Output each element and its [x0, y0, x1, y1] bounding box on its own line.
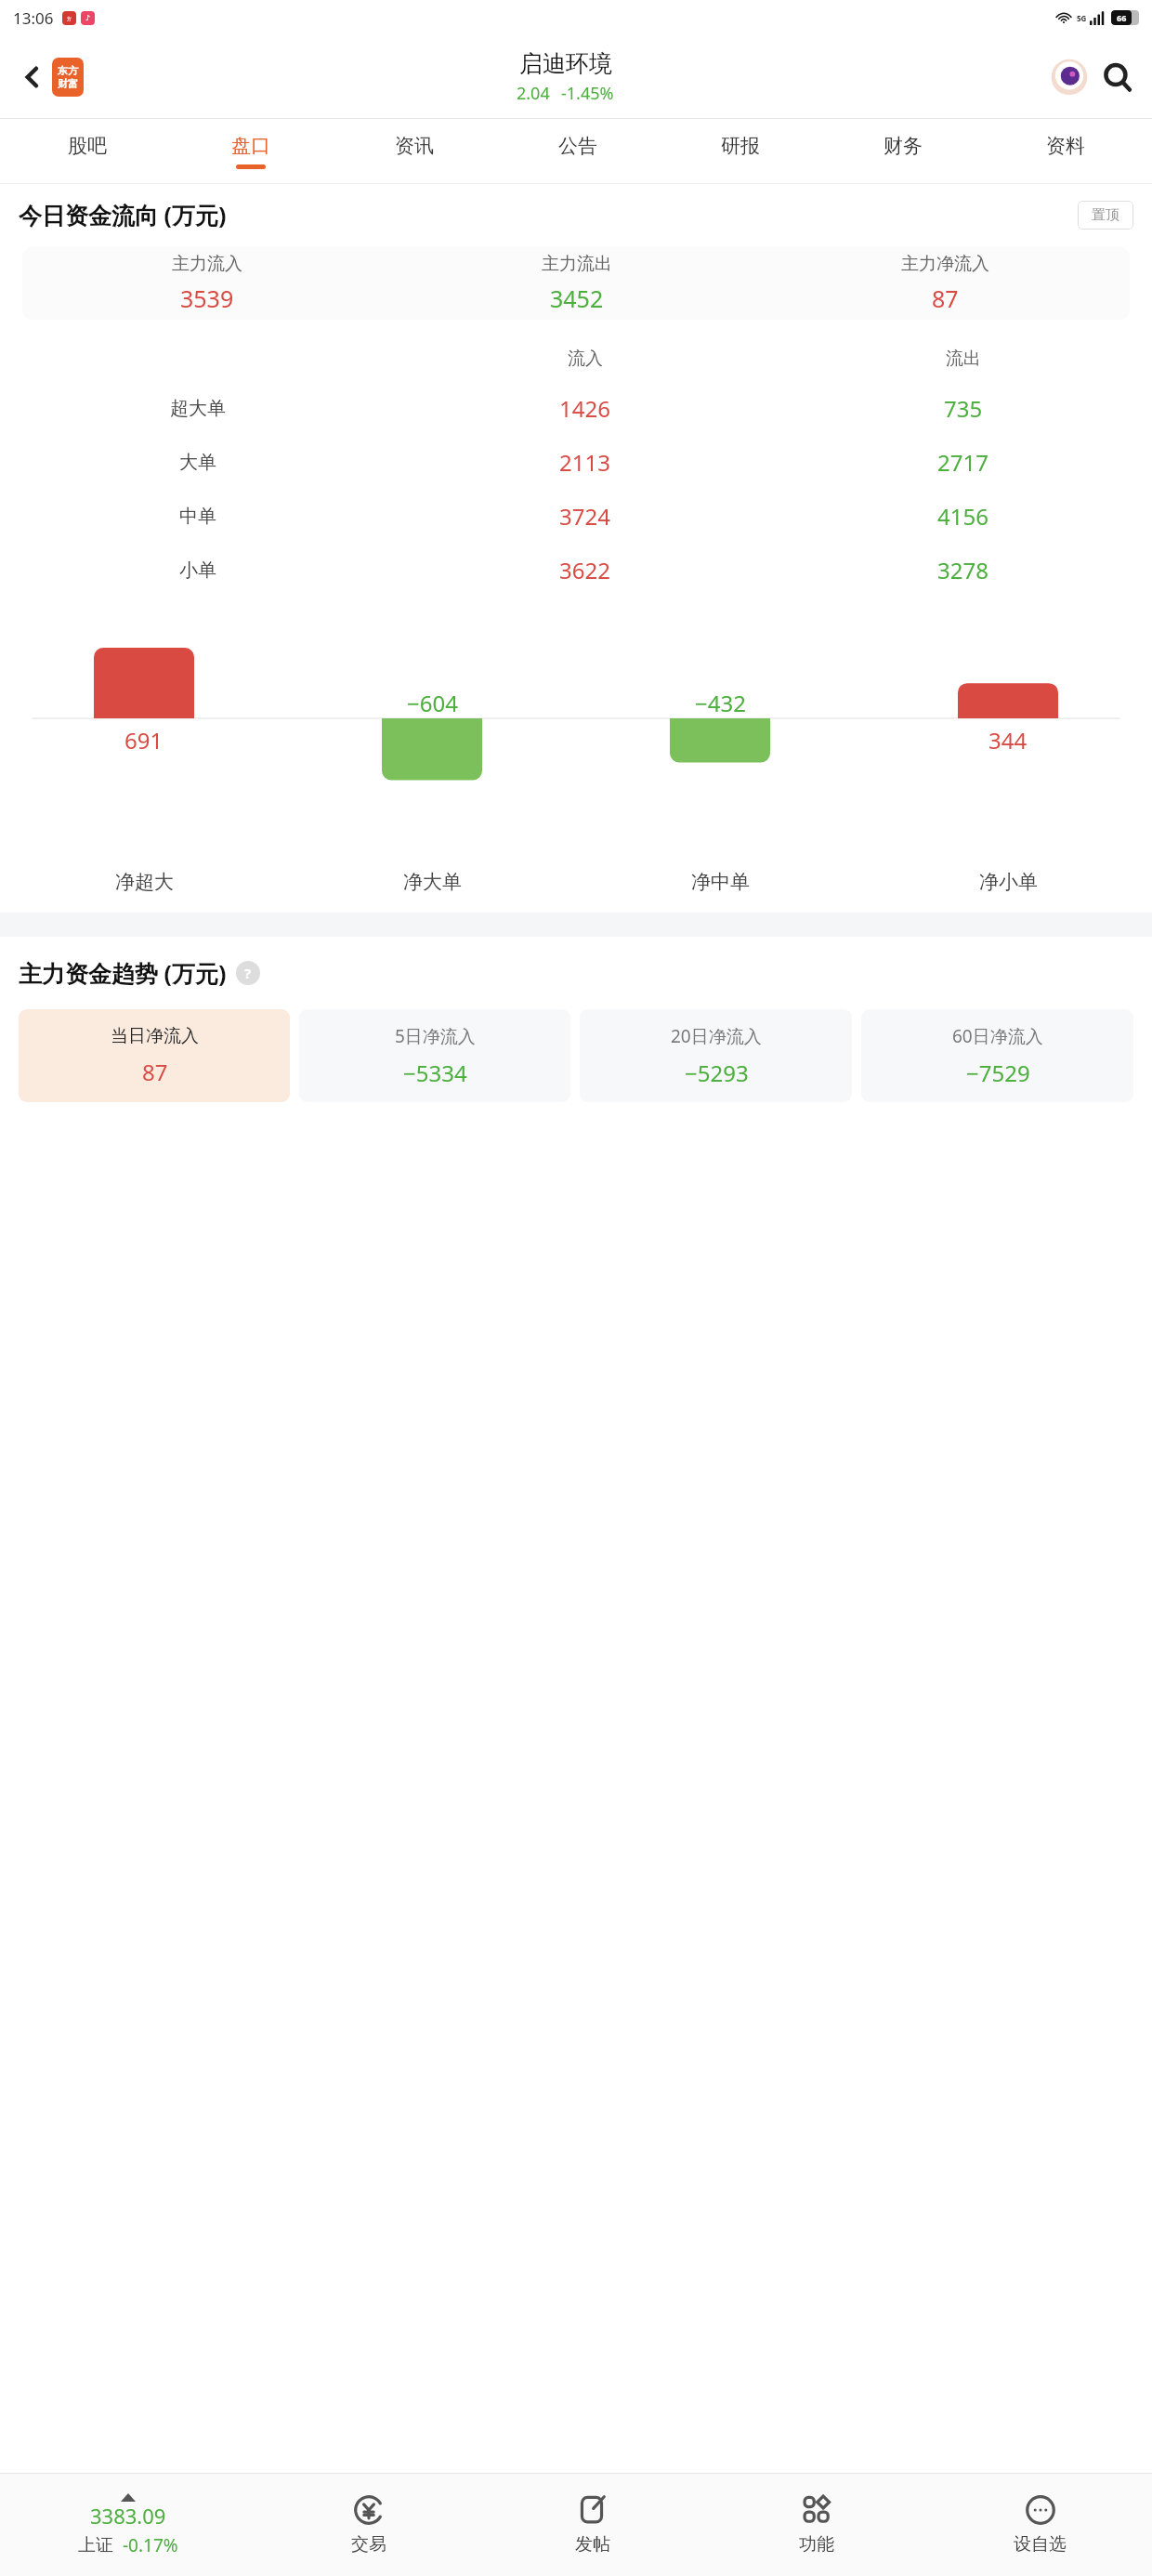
staticText: 主力资金趋势 (万元) — [19, 957, 227, 989]
staticText: −5293 — [685, 1058, 749, 1088]
staticText: 小单 — [179, 559, 216, 582]
staticText: 股吧 — [68, 134, 107, 158]
staticText: 主力净流入 — [901, 253, 989, 275]
staticText: 启迪环境 — [519, 49, 612, 78]
button[interactable]: Assistant — [1048, 56, 1091, 99]
staticText: 2717 — [937, 447, 988, 478]
staticText: 3278 — [937, 555, 988, 585]
staticText: 流出 — [946, 348, 981, 370]
staticText: 691 — [124, 725, 164, 756]
button[interactable]: 置顶 — [1078, 201, 1133, 230]
staticText: 87 — [932, 283, 959, 314]
staticText: 今日资金流向 (万元) — [19, 199, 227, 230]
staticText: 4156 — [937, 501, 988, 532]
staticText: 2.04 — [517, 82, 550, 105]
staticText: ? — [244, 964, 252, 982]
button[interactable]: 资料 — [984, 119, 1146, 184]
staticText: 净大单 — [403, 870, 462, 894]
staticText: 超大单 — [170, 397, 226, 420]
staticText: −5334 — [403, 1058, 467, 1088]
staticText: 5日净流入 — [395, 1024, 476, 1048]
staticText: ♪ — [85, 14, 91, 22]
button[interactable]: 60日净流入 — [861, 1009, 1133, 1102]
button[interactable]: 设自选 — [928, 2474, 1152, 2576]
staticText: -0.17% — [123, 2533, 178, 2557]
staticText: 发帖 — [575, 2533, 610, 2556]
button[interactable]: 研报 — [659, 119, 821, 184]
staticText: 3724 — [559, 501, 610, 532]
staticText: 资讯 — [395, 134, 434, 158]
staticText: 财务 — [884, 134, 923, 158]
staticText: 公告 — [558, 134, 597, 158]
staticText: 功能 — [799, 2533, 834, 2556]
staticText: 2113 — [559, 447, 610, 478]
staticText: 东方 — [58, 64, 78, 77]
staticText: 20日净流入 — [671, 1024, 762, 1048]
button[interactable]: 当日净流入 — [19, 1009, 290, 1102]
staticText: 设自选 — [1014, 2533, 1067, 2556]
button[interactable]: 20日净流入 — [580, 1009, 852, 1102]
staticText: 净中单 — [691, 870, 750, 894]
button[interactable]: 股吧 — [6, 119, 169, 184]
button[interactable]: 交易 — [256, 2474, 480, 2576]
staticText: 当日净流入 — [111, 1025, 199, 1047]
staticText: 3539 — [180, 283, 234, 314]
button[interactable]: Search — [1096, 56, 1139, 99]
staticText: 735 — [944, 393, 983, 424]
staticText: 87 — [142, 1057, 168, 1087]
button[interactable]: Back — [13, 58, 52, 97]
staticText: -1.45% — [561, 82, 614, 105]
button[interactable]: 盘口 — [169, 119, 333, 184]
staticText: −432 — [695, 688, 746, 718]
staticText: 1426 — [559, 393, 610, 424]
staticText: 主力流入 — [172, 253, 242, 275]
button[interactable]: 5日净流入 — [299, 1009, 570, 1102]
button[interactable]: 发帖 — [480, 2474, 704, 2576]
staticText: 中单 — [179, 505, 216, 528]
staticText: 流入 — [568, 348, 603, 370]
button[interactable]: 功能 — [704, 2474, 928, 2576]
button[interactable]: 3383.09 — [0, 2474, 256, 2576]
staticText: 主力流出 — [542, 253, 612, 275]
button[interactable]: 东方 — [52, 58, 84, 97]
staticText: 13:06 — [13, 7, 54, 29]
staticText: 盘口 — [231, 134, 270, 158]
button[interactable]: 公告 — [496, 119, 659, 184]
staticText: 资料 — [1046, 134, 1085, 158]
button[interactable]: Help — [236, 961, 260, 985]
staticText: 344 — [988, 725, 1028, 756]
staticText: 交易 — [351, 2533, 386, 2556]
button[interactable]: 资讯 — [333, 119, 496, 184]
staticText: 3452 — [550, 283, 604, 314]
staticText: −7529 — [966, 1058, 1030, 1088]
staticText: 60日净流入 — [952, 1024, 1043, 1048]
staticText: 上证 — [78, 2534, 113, 2556]
staticText: 置顶 — [1092, 206, 1119, 224]
staticText: 大单 — [179, 451, 216, 474]
staticText: 3383.09 — [90, 2502, 166, 2530]
staticText: 净超大 — [115, 870, 174, 894]
staticText: −604 — [407, 688, 458, 718]
button[interactable]: 财务 — [821, 119, 984, 184]
staticText: 3622 — [559, 555, 610, 585]
staticText: 方 — [67, 16, 72, 21]
staticText: 5G — [1077, 13, 1087, 23]
staticText: 66 — [1117, 12, 1127, 23]
staticText: 财富 — [58, 77, 78, 90]
staticText: 研报 — [721, 134, 760, 158]
staticText: 净小单 — [979, 870, 1038, 894]
